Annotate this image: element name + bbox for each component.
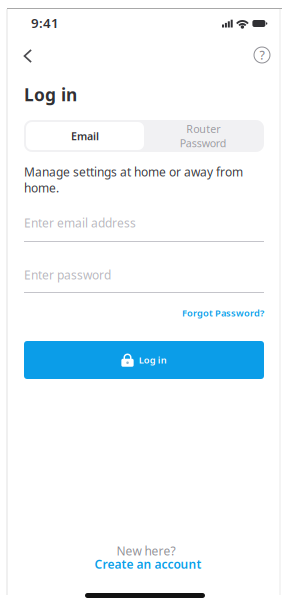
button[interactable]: Help bbox=[249, 42, 275, 68]
button[interactable]: Router Password bbox=[144, 122, 262, 150]
staticText: Enter email address bbox=[24, 215, 136, 231]
staticText: 9:41 bbox=[31, 14, 59, 32]
button[interactable]: Back bbox=[15, 43, 41, 69]
staticText: Log in bbox=[139, 354, 167, 366]
staticText: Forgot Password? bbox=[182, 307, 264, 319]
staticText: New here? bbox=[116, 543, 175, 559]
staticText: Manage settings at home or away from hom… bbox=[24, 164, 243, 196]
staticText: Create an account bbox=[94, 556, 201, 572]
button[interactable]: Create an account bbox=[28, 557, 268, 571]
button[interactable]: Email bbox=[26, 122, 144, 150]
staticText: Email bbox=[71, 129, 99, 143]
staticText: Router Password bbox=[179, 122, 226, 150]
staticText: Log in bbox=[24, 83, 77, 106]
staticText: ? bbox=[259, 47, 264, 63]
staticText: Enter password bbox=[24, 267, 111, 283]
button[interactable]: Forgot Password? bbox=[154, 306, 264, 320]
button[interactable]: Log in bbox=[24, 341, 264, 379]
